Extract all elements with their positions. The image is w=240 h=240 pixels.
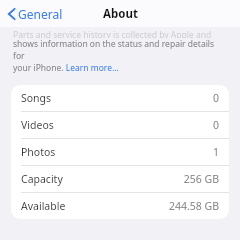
staticText: 256 GB (183, 172, 219, 186)
button[interactable]: Available (11, 193, 229, 219)
staticText: Parts and service history is collected b… (13, 29, 212, 38)
staticText: 1 (212, 145, 219, 159)
button[interactable]: Songs (11, 85, 229, 112)
staticText: 0 (212, 118, 219, 132)
staticText: About (103, 6, 138, 22)
staticText: Capacity (21, 172, 63, 186)
other: Back (8, 8, 15, 20)
staticText: 0 (212, 91, 219, 105)
staticText: General (18, 6, 63, 22)
button[interactable]: Capacity (11, 166, 229, 193)
staticText: shows information on the status and repa… (13, 38, 227, 62)
button[interactable]: Photos (11, 139, 229, 166)
staticText: 244.58 GB (168, 199, 219, 213)
staticText: Available (21, 199, 66, 213)
staticText: Videos (21, 118, 54, 132)
button[interactable]: your iPhone. Learn more... (13, 62, 119, 74)
staticText: Songs (21, 91, 52, 105)
staticText: Photos (21, 145, 56, 159)
button[interactable]: Back (6, 4, 65, 24)
button[interactable]: Videos (11, 112, 229, 139)
